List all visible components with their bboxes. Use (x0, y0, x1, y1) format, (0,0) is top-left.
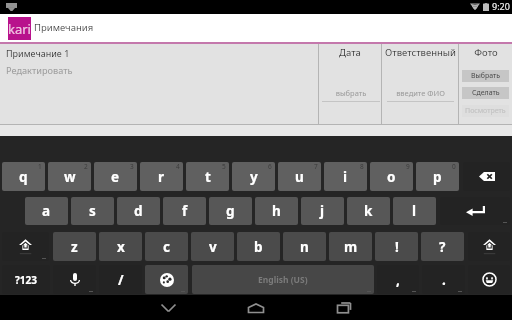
staticText: n (300, 238, 309, 256)
button[interactable]: kari (8, 17, 31, 40)
button[interactable]: Hide keyboard (124, 295, 212, 320)
button[interactable]: / (99, 265, 142, 294)
button[interactable]: Enter (440, 197, 510, 225)
staticText: . (442, 271, 446, 289)
staticText: j (320, 202, 325, 220)
button[interactable]: h (255, 197, 298, 225)
button[interactable]: g (209, 197, 252, 225)
button[interactable]: a (25, 197, 68, 225)
button[interactable]: Delete (463, 162, 510, 191)
button[interactable]: t (186, 162, 229, 191)
staticText: ?123 (15, 273, 37, 287)
staticText: d (134, 202, 143, 220)
button[interactable]: Сделать (462, 87, 509, 99)
button[interactable]: k (347, 197, 390, 225)
button[interactable]: Shift (468, 232, 510, 261)
button[interactable]: c (145, 232, 188, 261)
staticText: Сделать (472, 88, 500, 98)
button[interactable]: y (232, 162, 275, 191)
button[interactable]: , (377, 265, 419, 294)
staticText: y (250, 168, 258, 186)
button[interactable]: r (140, 162, 183, 191)
button[interactable]: m (329, 232, 372, 261)
staticText: 9 (406, 162, 410, 171)
staticText: Ответственный (385, 46, 456, 59)
button[interactable]: n (283, 232, 326, 261)
staticText: i (343, 168, 348, 186)
button[interactable]: Посмотреть (462, 105, 509, 117)
button[interactable]: v (191, 232, 234, 261)
staticText: v (209, 238, 217, 256)
staticText: ! (395, 238, 399, 256)
staticText: b (254, 238, 263, 256)
staticText: 8 (360, 162, 364, 171)
staticText: 5 (222, 162, 226, 171)
button[interactable]: Emoji (468, 265, 510, 294)
staticText: kari (8, 20, 31, 38)
staticText: u (295, 168, 304, 186)
button[interactable]: ? (421, 232, 464, 261)
button[interactable]: Примечание 1 (0, 44, 318, 124)
staticText: f (182, 202, 188, 220)
button[interactable]: Recent apps (300, 295, 388, 320)
staticText: r (158, 168, 165, 186)
staticText: c (163, 238, 170, 256)
staticText: w (64, 168, 76, 186)
button[interactable]: q (2, 162, 45, 191)
staticText: t (205, 168, 211, 186)
staticText: g (226, 202, 235, 220)
staticText: s (89, 202, 96, 220)
button[interactable]: i (324, 162, 367, 191)
staticText: введите ФИО (387, 88, 454, 98)
button[interactable]: o (370, 162, 413, 191)
button[interactable]: Home (212, 295, 300, 320)
staticText: q (19, 168, 28, 186)
staticText: k (364, 202, 373, 220)
button[interactable]: Change language (145, 265, 188, 294)
button[interactable]: Voice input (53, 265, 96, 294)
staticText: e (111, 168, 120, 186)
staticText: a (42, 202, 51, 220)
staticText: ? (439, 238, 446, 256)
staticText: x (117, 238, 125, 256)
staticText: 0 (452, 162, 456, 171)
staticText: , (396, 271, 400, 289)
button[interactable]: f (163, 197, 206, 225)
button[interactable]: выбрать (322, 88, 380, 102)
staticText: m (344, 238, 358, 256)
button[interactable]: English (US) (192, 265, 374, 294)
button[interactable]: s (71, 197, 114, 225)
button[interactable]: Выбрать (462, 70, 509, 82)
button[interactable]: d (117, 197, 160, 225)
button[interactable]: u (278, 162, 321, 191)
button[interactable]: b (237, 232, 280, 261)
button[interactable]: Shift (2, 232, 49, 261)
staticText: Фото (474, 46, 498, 59)
button[interactable]: w (48, 162, 91, 191)
staticText: z (71, 238, 78, 256)
staticText: Примечания (34, 21, 94, 34)
button[interactable]: e (94, 162, 137, 191)
button[interactable]: введите ФИО (387, 88, 454, 102)
staticText: 2 (84, 162, 88, 171)
staticText: 3 (130, 162, 134, 171)
button[interactable]: . (422, 265, 465, 294)
staticText: Дата (339, 46, 361, 59)
button[interactable]: p (416, 162, 459, 191)
button[interactable]: ?123 (2, 265, 50, 294)
staticText: Выбрать (471, 71, 501, 81)
button[interactable]: ! (375, 232, 418, 261)
staticText: 1 (38, 162, 42, 171)
button[interactable]: x (99, 232, 142, 261)
staticText: h (272, 202, 281, 220)
staticText: 6 (268, 162, 272, 171)
staticText: l (412, 202, 417, 220)
button[interactable]: z (53, 232, 96, 261)
button[interactable]: j (301, 197, 344, 225)
staticText: Посмотреть (465, 106, 506, 116)
staticText: 9:20 (492, 0, 510, 12)
button[interactable]: l (393, 197, 436, 225)
staticText: 7 (314, 162, 318, 171)
staticText: English (US) (258, 274, 308, 286)
staticText: Редактировать (6, 64, 73, 77)
